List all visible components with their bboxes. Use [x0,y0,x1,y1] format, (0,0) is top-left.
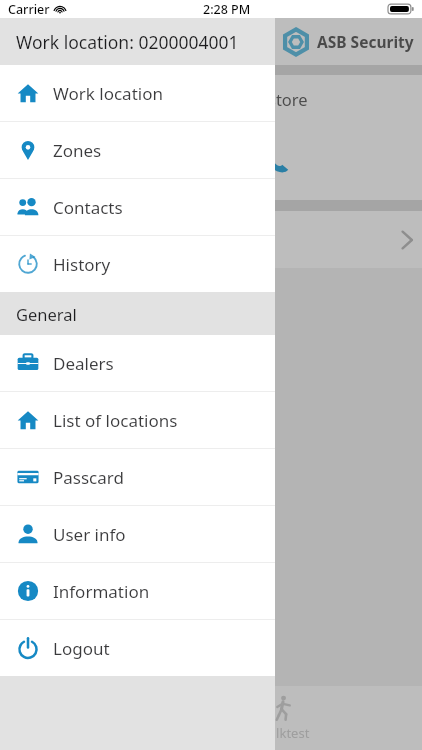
button[interactable] [0,211,422,268]
staticText: Passcard [53,466,124,489]
button[interactable]: Logout [0,620,275,676]
staticText: General [16,303,77,325]
button[interactable]: User info [0,506,275,562]
staticText: Walktest [257,724,310,742]
staticText: Information [53,580,150,603]
staticText: Zones [53,139,102,162]
button[interactable]: Information [0,563,275,619]
button[interactable]: store [0,75,422,122]
staticText: User info [53,523,126,546]
button[interactable]: Call [0,122,422,200]
button[interactable]: History [0,236,275,292]
staticText: History [53,253,111,276]
staticText: Dealers [53,352,114,375]
button[interactable]: Work location: 0200004001 [0,18,275,65]
button[interactable]: List of locations [0,392,275,448]
staticText: ASB Security [317,31,414,52]
button[interactable]: Passcard [0,449,275,505]
staticText: Contacts [53,196,123,219]
staticText: Work location: 0200004001 [16,30,239,54]
staticText: Work location [53,82,163,105]
staticText: List of locations [53,409,178,432]
button[interactable]: Dealers [0,335,275,391]
staticText: Logout [53,637,110,660]
staticText: Carrier [8,1,50,18]
staticText: 2:28 PM [203,1,251,18]
button[interactable]: Work location [0,65,275,121]
button[interactable]: Walktest [72,686,422,750]
staticText: store [268,88,308,110]
button[interactable]: Contacts [0,179,275,235]
button[interactable]: Zones [0,122,275,178]
